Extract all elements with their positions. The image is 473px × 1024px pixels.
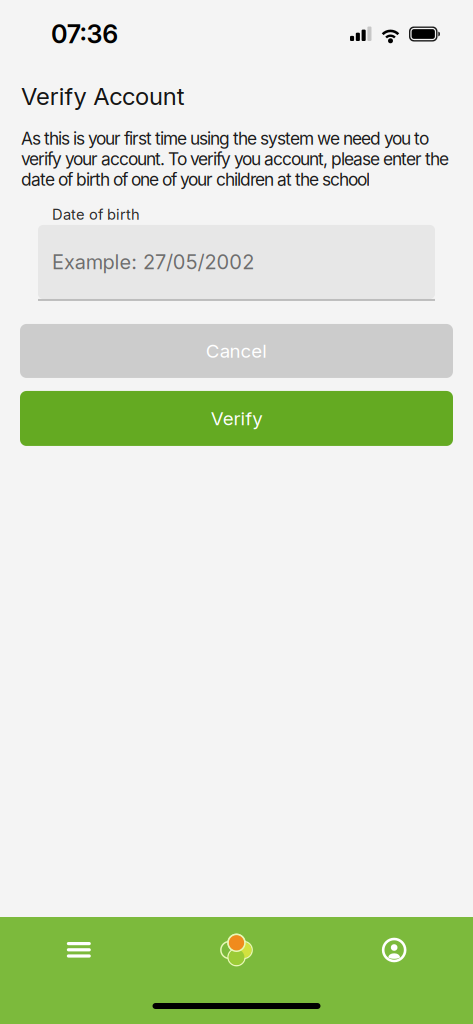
staticText: Verify Account bbox=[21, 82, 185, 110]
button[interactable]: Menu bbox=[0, 917, 158, 983]
button[interactable]: Account bbox=[315, 917, 473, 983]
button[interactable]: Example: 27/05/2002 bbox=[38, 225, 435, 301]
button[interactable]: Verify bbox=[20, 391, 453, 446]
staticText: As this is your first time using the sys… bbox=[21, 128, 449, 190]
staticText: Verify bbox=[211, 407, 262, 429]
staticText: Cancel bbox=[206, 340, 267, 362]
staticText: Example: 27/05/2002 bbox=[52, 250, 254, 274]
staticText: Date of birth bbox=[52, 206, 140, 223]
button[interactable]: Cancel bbox=[20, 324, 453, 378]
button[interactable]: Home bbox=[158, 917, 315, 983]
staticText: 07:36 bbox=[51, 19, 118, 49]
